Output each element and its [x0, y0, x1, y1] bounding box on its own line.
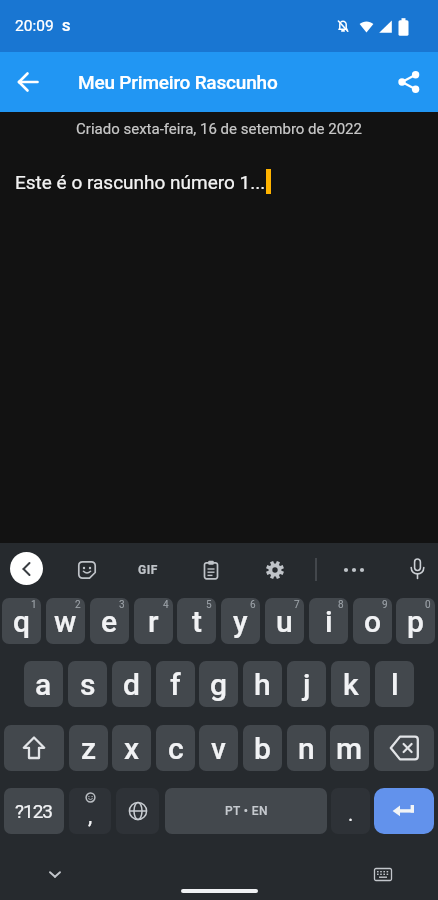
button[interactable]: a [24, 661, 63, 707]
staticText: s [80, 667, 96, 702]
button[interactable]: j [287, 661, 326, 707]
staticText: x [124, 731, 140, 766]
button[interactable]: b [243, 725, 282, 771]
staticText: 9 [382, 599, 388, 611]
button[interactable]: u [265, 598, 304, 644]
staticText: GIF [138, 563, 158, 577]
button[interactable]: c [156, 725, 195, 771]
button[interactable] [191, 548, 231, 591]
staticText: 7 [294, 599, 300, 611]
staticText: a [35, 667, 52, 702]
staticText: k [343, 667, 359, 702]
button[interactable]: v [199, 725, 238, 771]
staticText: 0 [425, 599, 431, 611]
button[interactable]: m [330, 725, 369, 771]
button[interactable]: ?123 [4, 788, 64, 834]
button[interactable] [0, 52, 56, 112]
button[interactable] [397, 548, 437, 591]
button[interactable] [255, 548, 295, 591]
staticText: i [325, 604, 333, 639]
button[interactable]: f [156, 661, 195, 707]
staticText: n [298, 731, 315, 766]
staticText: 1 [31, 599, 37, 611]
staticText: f [170, 667, 181, 702]
button[interactable] [374, 725, 434, 771]
button[interactable]: g [199, 661, 238, 707]
button[interactable]: p [396, 598, 435, 644]
staticText: Este é o rascunho número 1... [15, 171, 266, 193]
button[interactable] [363, 859, 403, 889]
staticText: v [211, 731, 226, 766]
staticText: r [148, 604, 159, 639]
staticText: g [210, 667, 228, 702]
staticText: t [192, 604, 202, 639]
staticText: c [168, 731, 184, 766]
button[interactable]: . [331, 788, 370, 834]
staticText: q [13, 604, 31, 639]
staticText: . [348, 802, 354, 825]
button[interactable]: x [112, 725, 151, 771]
button[interactable] [334, 548, 374, 591]
staticText: 6 [250, 599, 256, 611]
staticText: l [391, 667, 399, 702]
button[interactable] [67, 548, 107, 591]
button[interactable] [386, 52, 438, 112]
staticText: 8 [338, 599, 344, 611]
staticText: w [54, 604, 77, 639]
button[interactable]: n [287, 725, 326, 771]
button[interactable] [10, 552, 43, 585]
staticText: e [101, 604, 118, 639]
staticText: , [88, 803, 93, 829]
button[interactable]: o [353, 598, 392, 644]
staticText: ?123 [15, 800, 53, 822]
button[interactable]: z [69, 725, 108, 771]
staticText: h [254, 667, 271, 702]
button[interactable]: l [375, 661, 414, 707]
button[interactable]: r [134, 598, 173, 644]
staticText: S [62, 18, 71, 34]
staticText: y [233, 604, 248, 639]
staticText: u [276, 604, 293, 639]
staticText: j [303, 667, 311, 702]
staticText: 20:09 [15, 17, 54, 35]
button[interactable]: h [243, 661, 282, 707]
staticText: o [364, 604, 382, 639]
button[interactable]: i [309, 598, 348, 644]
button[interactable] [116, 788, 159, 834]
staticText: 4 [163, 599, 169, 611]
staticText: z [81, 731, 97, 766]
button[interactable]: w [46, 598, 85, 644]
button[interactable] [4, 725, 64, 771]
staticText: PT • EN [225, 804, 268, 818]
button[interactable] [374, 788, 434, 834]
staticText: Criado sexta-feira, 16 de setembro de 20… [0, 120, 438, 138]
staticText: 3 [119, 599, 125, 611]
button[interactable]: q [2, 598, 41, 644]
button[interactable]: PT • EN [165, 788, 327, 834]
button[interactable]: GIF [128, 548, 168, 591]
button[interactable]: d [112, 661, 151, 707]
button[interactable]: e [90, 598, 129, 644]
staticText: 2 [75, 599, 81, 611]
button[interactable] [35, 859, 75, 889]
button[interactable]: , [69, 788, 111, 834]
staticText: 5 [206, 599, 212, 611]
staticText: d [123, 667, 140, 702]
staticText: m [336, 731, 363, 766]
staticText: b [254, 731, 271, 766]
button[interactable]: y [221, 598, 260, 644]
button[interactable]: t [177, 598, 216, 644]
button[interactable]: k [331, 661, 370, 707]
staticText: Meu Primeiro Rascunho [78, 71, 278, 93]
staticText: p [407, 604, 424, 639]
button[interactable]: s [68, 661, 107, 707]
